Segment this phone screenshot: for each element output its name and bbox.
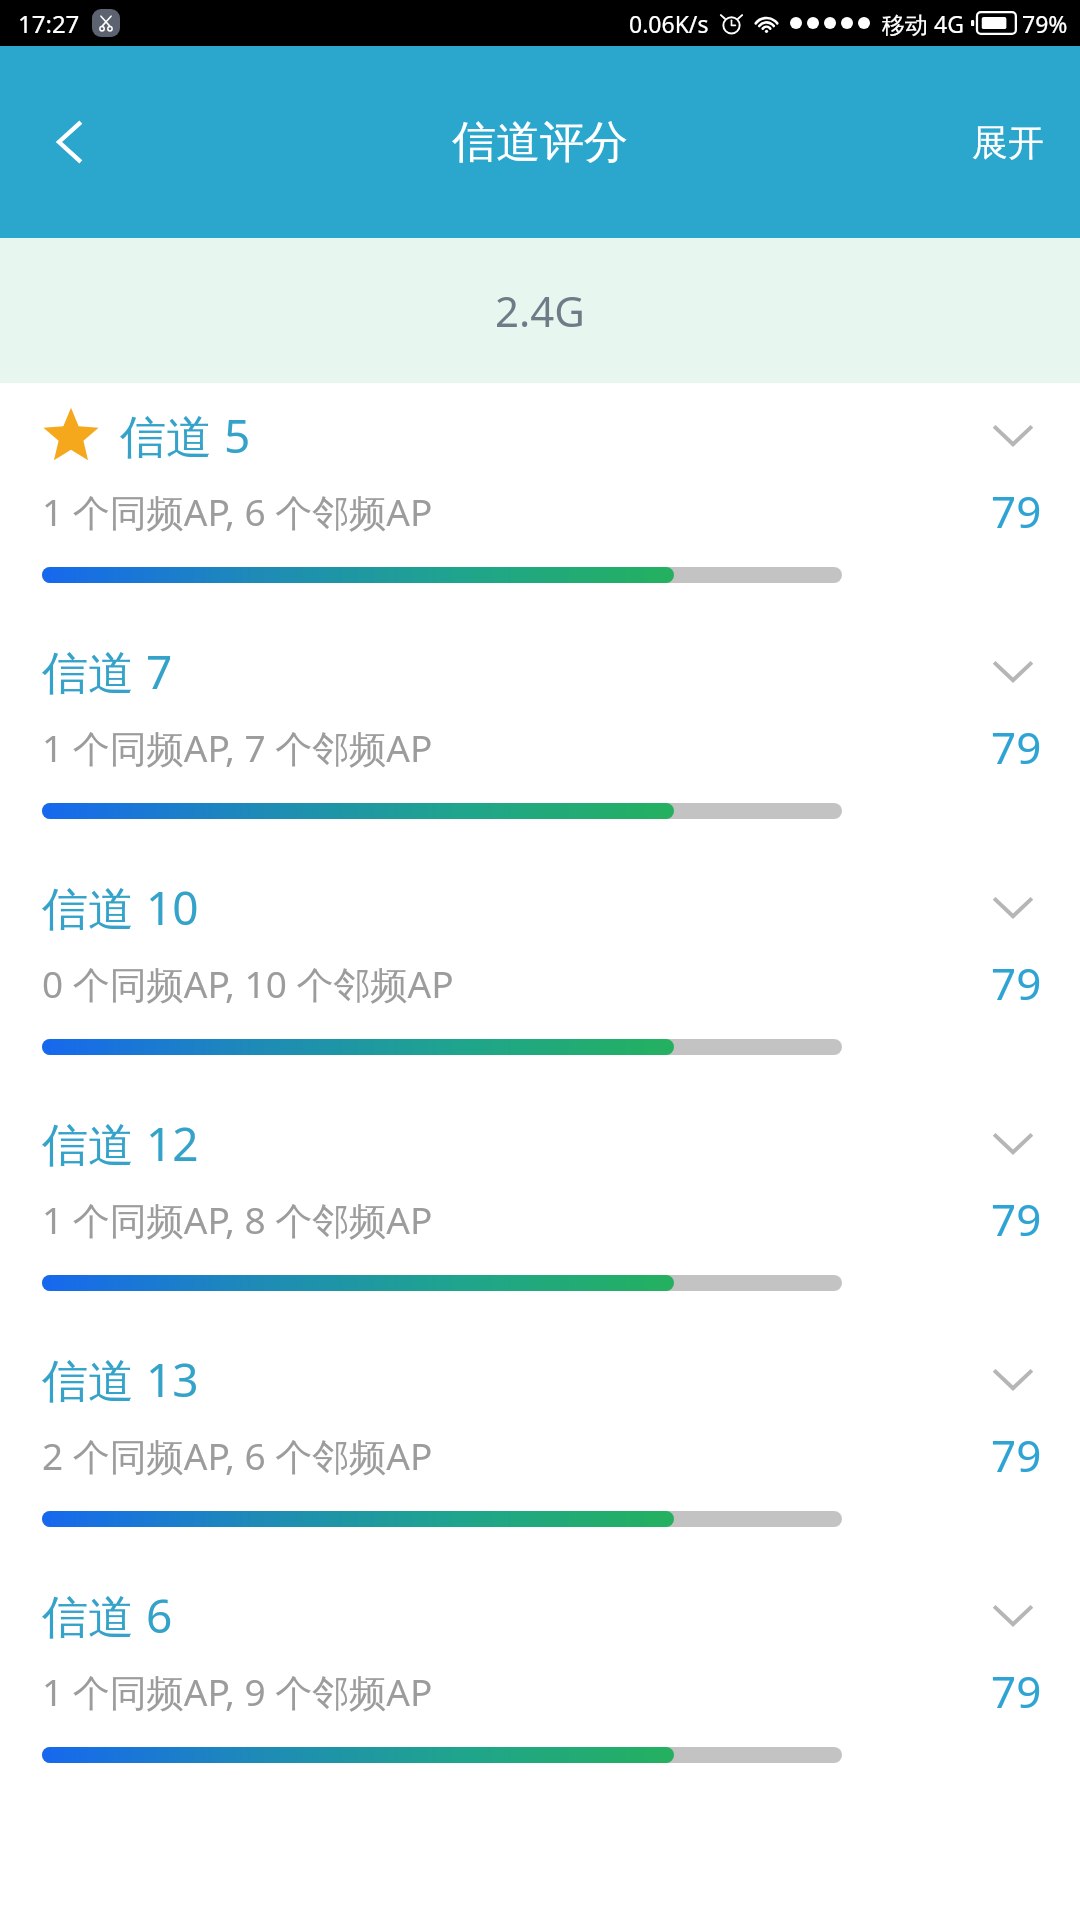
staticText: 1 个同频AP, 7 个邻频AP bbox=[42, 722, 433, 773]
staticText: 79 bbox=[991, 717, 1042, 777]
staticText: 信道 12 bbox=[42, 1112, 199, 1175]
staticText: 2.4G bbox=[495, 282, 585, 339]
staticText: 1 个同频AP, 6 个邻频AP bbox=[42, 486, 433, 537]
staticText: 信道评分 bbox=[452, 115, 628, 170]
staticText: 展开 bbox=[972, 120, 1044, 165]
staticText: 信道 6 bbox=[42, 1584, 173, 1647]
button[interactable]: Expand channel 5 bbox=[980, 403, 1046, 467]
button[interactable]: Expand channel 13 bbox=[980, 1347, 1046, 1411]
staticText: 1 个同频AP, 9 个邻频AP bbox=[42, 1666, 433, 1717]
staticText: 79 bbox=[991, 1661, 1042, 1721]
button[interactable]: Expand channel 6 bbox=[980, 1583, 1046, 1647]
button[interactable]: 信道 12 bbox=[0, 1055, 1080, 1291]
button[interactable]: 信道 7 bbox=[0, 583, 1080, 819]
staticText: 1 个同频AP, 8 个邻频AP bbox=[42, 1194, 433, 1245]
button[interactable]: 信道 5 bbox=[0, 383, 1080, 583]
button[interactable]: Expand channel 7 bbox=[980, 639, 1046, 703]
staticText: 0 个同频AP, 10 个邻频AP bbox=[42, 958, 454, 1009]
staticText: 0.06K/s bbox=[629, 8, 709, 39]
button[interactable]: 展开 bbox=[936, 46, 1080, 238]
staticText: 信道 10 bbox=[42, 876, 199, 939]
staticText: 信道 13 bbox=[42, 1348, 199, 1411]
staticText: 信道 7 bbox=[42, 640, 173, 703]
button[interactable]: Expand channel 12 bbox=[980, 1111, 1046, 1175]
button[interactable]: 信道 13 bbox=[0, 1291, 1080, 1527]
staticText: 79 bbox=[991, 481, 1042, 541]
staticText: 2 个同频AP, 6 个邻频AP bbox=[42, 1430, 433, 1481]
staticText: 79 bbox=[991, 1425, 1042, 1485]
staticText: 79% bbox=[1022, 8, 1068, 39]
staticText: 信道 5 bbox=[120, 404, 251, 467]
button[interactable]: 信道 6 bbox=[0, 1527, 1080, 1763]
staticText: 17:27 bbox=[18, 7, 80, 40]
button[interactable]: 信道 10 bbox=[0, 819, 1080, 1055]
button[interactable]: Back bbox=[0, 46, 140, 238]
button[interactable]: Expand channel 10 bbox=[980, 875, 1046, 939]
staticText: 79 bbox=[991, 1189, 1042, 1249]
staticText: 移动 4G bbox=[882, 8, 964, 39]
staticText: 79 bbox=[991, 953, 1042, 1013]
